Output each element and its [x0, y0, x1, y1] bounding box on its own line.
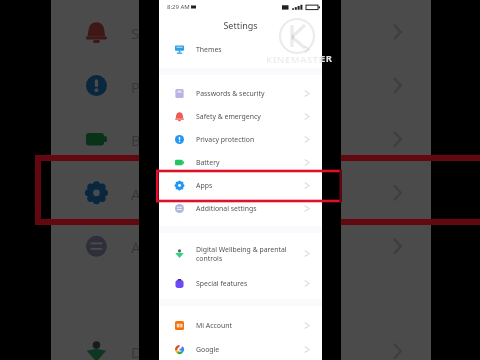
staticText: KINEMASTER: [266, 53, 331, 66]
button[interactable]: Digital Wellbeing & parental controls: [159, 242, 322, 265]
staticText: Settings: [159, 19, 322, 31]
button[interactable]: Passwords & security: [159, 82, 322, 105]
button[interactable]: Google: [159, 338, 322, 360]
button[interactable]: Themes: [159, 38, 322, 61]
staticText: Themes: [196, 45, 303, 54]
staticText: Additional settings: [196, 204, 303, 213]
button[interactable]: Special features: [159, 272, 322, 295]
staticText: Google: [196, 345, 303, 354]
staticText: Digital Wellbeing & parental controls: [131, 342, 380, 360]
staticText: Battery: [196, 158, 303, 167]
staticText: ER: [321, 52, 333, 64]
staticText: 8:29 AM: [167, 3, 190, 11]
button[interactable]: Battery: [159, 151, 322, 174]
button[interactable]: Apps: [159, 174, 322, 197]
button[interactable]: Privacy protection: [159, 128, 322, 151]
staticText: Apps: [131, 184, 380, 204]
staticText: Digital Wellbeing & parental controls: [196, 245, 303, 263]
staticText: Battery: [131, 130, 380, 150]
staticText: Additional settings: [131, 237, 380, 257]
button[interactable]: Mi Account: [159, 314, 322, 337]
staticText: Privacy protection: [196, 135, 303, 144]
staticText: Special features: [196, 279, 303, 288]
staticText: Apps: [196, 181, 303, 190]
button[interactable]: Additional settings: [159, 197, 322, 220]
staticText: Passwords & security: [196, 89, 303, 98]
staticText: Privacy protection: [131, 77, 380, 97]
staticText: Mi Account: [196, 321, 303, 330]
button[interactable]: Safety & emergency: [159, 105, 322, 128]
staticText: Safety & emergency: [196, 112, 303, 121]
staticText: Safety & emergency: [131, 23, 380, 43]
